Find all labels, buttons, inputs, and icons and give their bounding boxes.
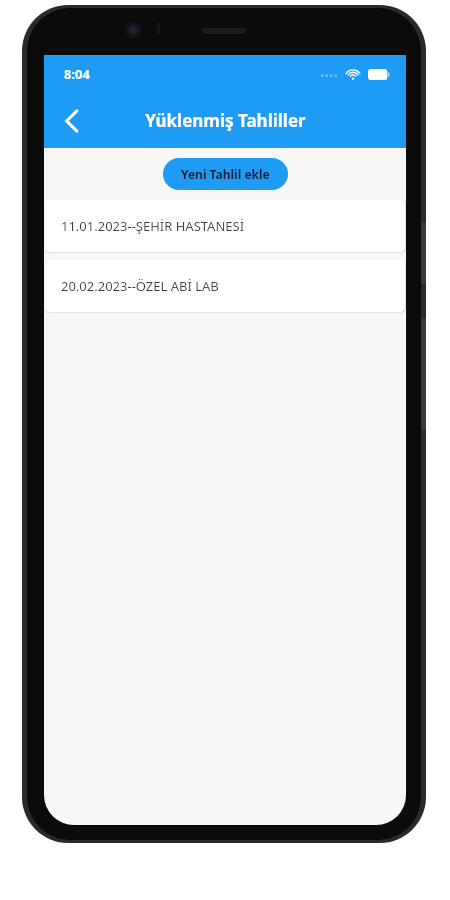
button[interactable]: 11.01.2023--ŞEHİR HASTANESİ	[45, 200, 405, 252]
staticText: Yüklenmiş Tahliller	[145, 109, 306, 132]
button[interactable]: Yeni Tahlil ekle	[163, 158, 288, 190]
staticText: 20.02.2023--ÖZEL ABİ LAB	[61, 277, 219, 295]
button[interactable]: Back	[50, 99, 94, 143]
staticText: 11.01.2023--ŞEHİR HASTANESİ	[61, 217, 245, 235]
staticText: Yeni Tahlil ekle	[181, 166, 270, 182]
button[interactable]: 20.02.2023--ÖZEL ABİ LAB	[45, 260, 405, 312]
staticText: 8:04	[64, 65, 90, 83]
